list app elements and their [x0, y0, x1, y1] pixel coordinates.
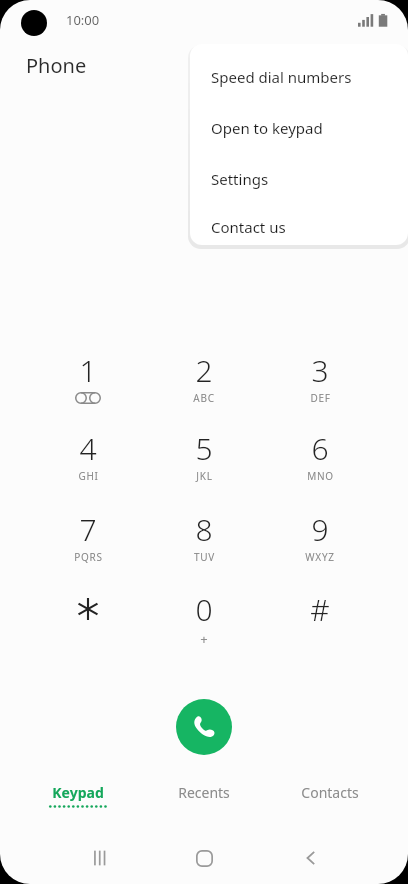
- button[interactable]: 6: [272, 428, 368, 498]
- button[interactable]: 3: [272, 350, 368, 420]
- button[interactable]: #: [272, 589, 368, 659]
- button[interactable]: Speed dial numbers: [190, 55, 408, 99]
- button[interactable]: Contact us: [190, 208, 408, 245]
- button[interactable]: 7: [40, 509, 136, 579]
- button[interactable]: 4: [40, 428, 136, 498]
- staticText: TUV: [194, 550, 215, 564]
- staticText: Settings: [211, 169, 269, 189]
- staticText: 10:00: [66, 11, 100, 29]
- staticText: 5: [195, 428, 213, 468]
- staticText: Speed dial numbers: [211, 67, 352, 87]
- button[interactable]: Contacts: [268, 783, 392, 823]
- staticText: PQRS: [74, 550, 103, 564]
- staticText: 6: [311, 428, 329, 468]
- button[interactable]: 2: [156, 350, 252, 420]
- staticText: #: [310, 589, 330, 629]
- staticText: DEF: [310, 391, 331, 405]
- button[interactable]: Back: [287, 840, 335, 876]
- staticText: 0: [195, 589, 213, 629]
- button[interactable]: Open to keypad: [190, 106, 408, 150]
- staticText: Contacts: [301, 783, 359, 802]
- staticText: Contact us: [211, 217, 286, 237]
- staticText: +: [200, 630, 208, 648]
- button[interactable]: Recent apps: [76, 840, 124, 876]
- staticText: GHI: [78, 469, 99, 483]
- button[interactable]: 0: [156, 589, 252, 659]
- staticText: MNO: [307, 469, 334, 483]
- staticText: JKL: [196, 469, 213, 483]
- staticText: Open to keypad: [211, 118, 323, 138]
- button[interactable]: 1: [40, 350, 136, 420]
- staticText: 7: [79, 509, 97, 549]
- button[interactable]: Keypad: [16, 783, 140, 823]
- staticText: 3: [311, 350, 329, 390]
- staticText: Recents: [178, 783, 230, 802]
- staticText: Phone: [26, 52, 87, 79]
- staticText: WXYZ: [305, 550, 335, 564]
- button[interactable]: 8: [156, 509, 252, 579]
- staticText: ABC: [193, 391, 215, 405]
- staticText: 1: [79, 350, 97, 390]
- staticText: 9: [311, 509, 329, 549]
- staticText: 2: [195, 350, 213, 390]
- staticText: 4: [79, 428, 97, 468]
- button[interactable]: 5: [156, 428, 252, 498]
- staticText: 8: [195, 509, 213, 549]
- button[interactable]: Call: [176, 699, 232, 755]
- button[interactable]: Settings: [190, 157, 408, 201]
- button[interactable]: 9: [272, 509, 368, 579]
- staticText: Keypad: [52, 783, 104, 802]
- button[interactable]: [40, 589, 136, 659]
- button[interactable]: Recents: [142, 783, 266, 823]
- button[interactable]: Home: [180, 840, 228, 876]
